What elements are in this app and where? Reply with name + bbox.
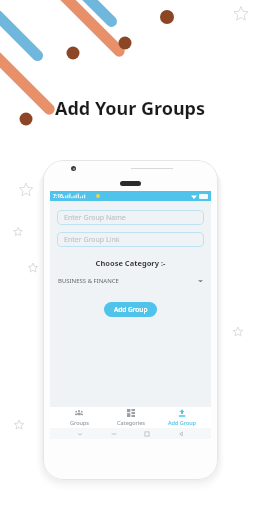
staticText: Add Your Groups [0,96,260,121]
button[interactable]: Enter Group Name [57,210,204,225]
staticText: Enter Group Name [64,213,126,223]
button[interactable]: Groups [56,407,102,428]
staticText: Enter Group Link [64,235,120,245]
button[interactable]: Add Group [159,407,205,428]
staticText: Add Group [114,305,148,314]
staticText: Categories [117,419,145,426]
staticText: Add Group [168,419,196,426]
button[interactable]: Enter Group Link [57,232,204,247]
button[interactable]: Add Group [104,302,157,317]
staticText: 7:16 [53,193,63,200]
button[interactable]: Categories [108,407,154,428]
button[interactable]: BUSINESS & FINANCE [58,275,203,286]
staticText: BUSINESS & FINANCE [58,277,119,285]
staticText: Choose Category :- [50,258,211,268]
staticText: Groups [70,419,89,426]
